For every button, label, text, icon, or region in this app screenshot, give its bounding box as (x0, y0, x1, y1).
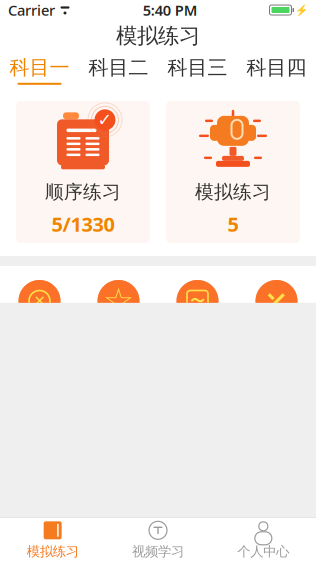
staticText: 科目四 (246, 55, 306, 80)
staticText: 模拟练习 (195, 181, 271, 204)
staticText: ✕ (33, 293, 45, 309)
staticText: Carrier (8, 0, 55, 20)
staticText: 模拟练习 (116, 23, 200, 49)
button[interactable]: ✓ (16, 101, 150, 243)
staticText: 5/1330 (51, 211, 114, 237)
staticText: 5 (227, 211, 238, 237)
staticText: ☆ (103, 281, 134, 321)
staticText: ⤫ (264, 284, 289, 318)
button[interactable]: 科目一 (0, 52, 79, 88)
staticText: 科目二 (88, 55, 148, 80)
button[interactable]: 视频学习 (105, 518, 211, 562)
button[interactable]: ✕ (0, 280, 79, 349)
button[interactable]: 科目四 (237, 52, 316, 88)
button[interactable]: 科目二 (79, 52, 158, 88)
staticText: ✓ (97, 110, 112, 130)
staticText: ⚡ (295, 4, 308, 16)
staticText: 视频学习 (132, 543, 184, 560)
staticText: 5:40 PM (143, 0, 198, 20)
button[interactable]: 个人中心 (211, 518, 316, 562)
button[interactable]: 〜 (158, 280, 237, 349)
staticText: 科目一 (9, 55, 69, 80)
button[interactable]: ⤫ (237, 280, 316, 349)
staticText: 顺序练习 (45, 181, 121, 204)
button[interactable]: 模拟练习 (0, 518, 105, 562)
staticText: 科目三 (167, 55, 227, 80)
button[interactable]: 科目三 (158, 52, 237, 88)
button[interactable]: ☆ (79, 280, 158, 349)
staticText: 个人中心 (237, 543, 289, 560)
staticText: 模拟练习 (27, 543, 79, 560)
staticText: 〜 (190, 292, 205, 310)
button[interactable]: 模拟练习 (166, 101, 300, 243)
